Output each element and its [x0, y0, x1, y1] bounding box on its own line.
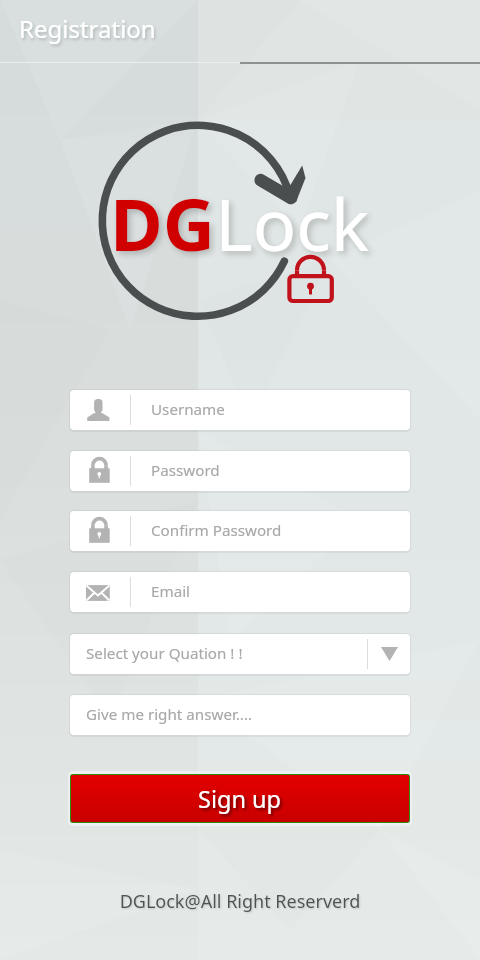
button[interactable]: Confirm Password [70, 511, 410, 551]
other: DGLock logo [284, 252, 338, 306]
button[interactable]: Username [70, 390, 410, 430]
staticText: DG [110, 174, 215, 272]
button[interactable]: Select your Quation ! ! [70, 634, 410, 674]
staticText: Confirm Password [151, 520, 282, 541]
staticText: Password [151, 460, 220, 481]
staticText: Select your Quation ! ! [86, 643, 243, 664]
staticText: Sign up [198, 783, 282, 815]
staticText: Registration [19, 12, 156, 45]
button[interactable]: Sign up [71, 775, 409, 822]
staticText: Give me right answer.... [86, 704, 253, 725]
button[interactable]: Give me right answer.... [70, 695, 410, 735]
staticText: DGLock@All Right Reserverd [0, 889, 480, 914]
staticText: Username [151, 399, 225, 420]
staticText: Lock [215, 174, 370, 272]
button[interactable]: Email [70, 572, 410, 612]
button[interactable]: Password [70, 451, 410, 491]
staticText: Email [151, 581, 191, 602]
